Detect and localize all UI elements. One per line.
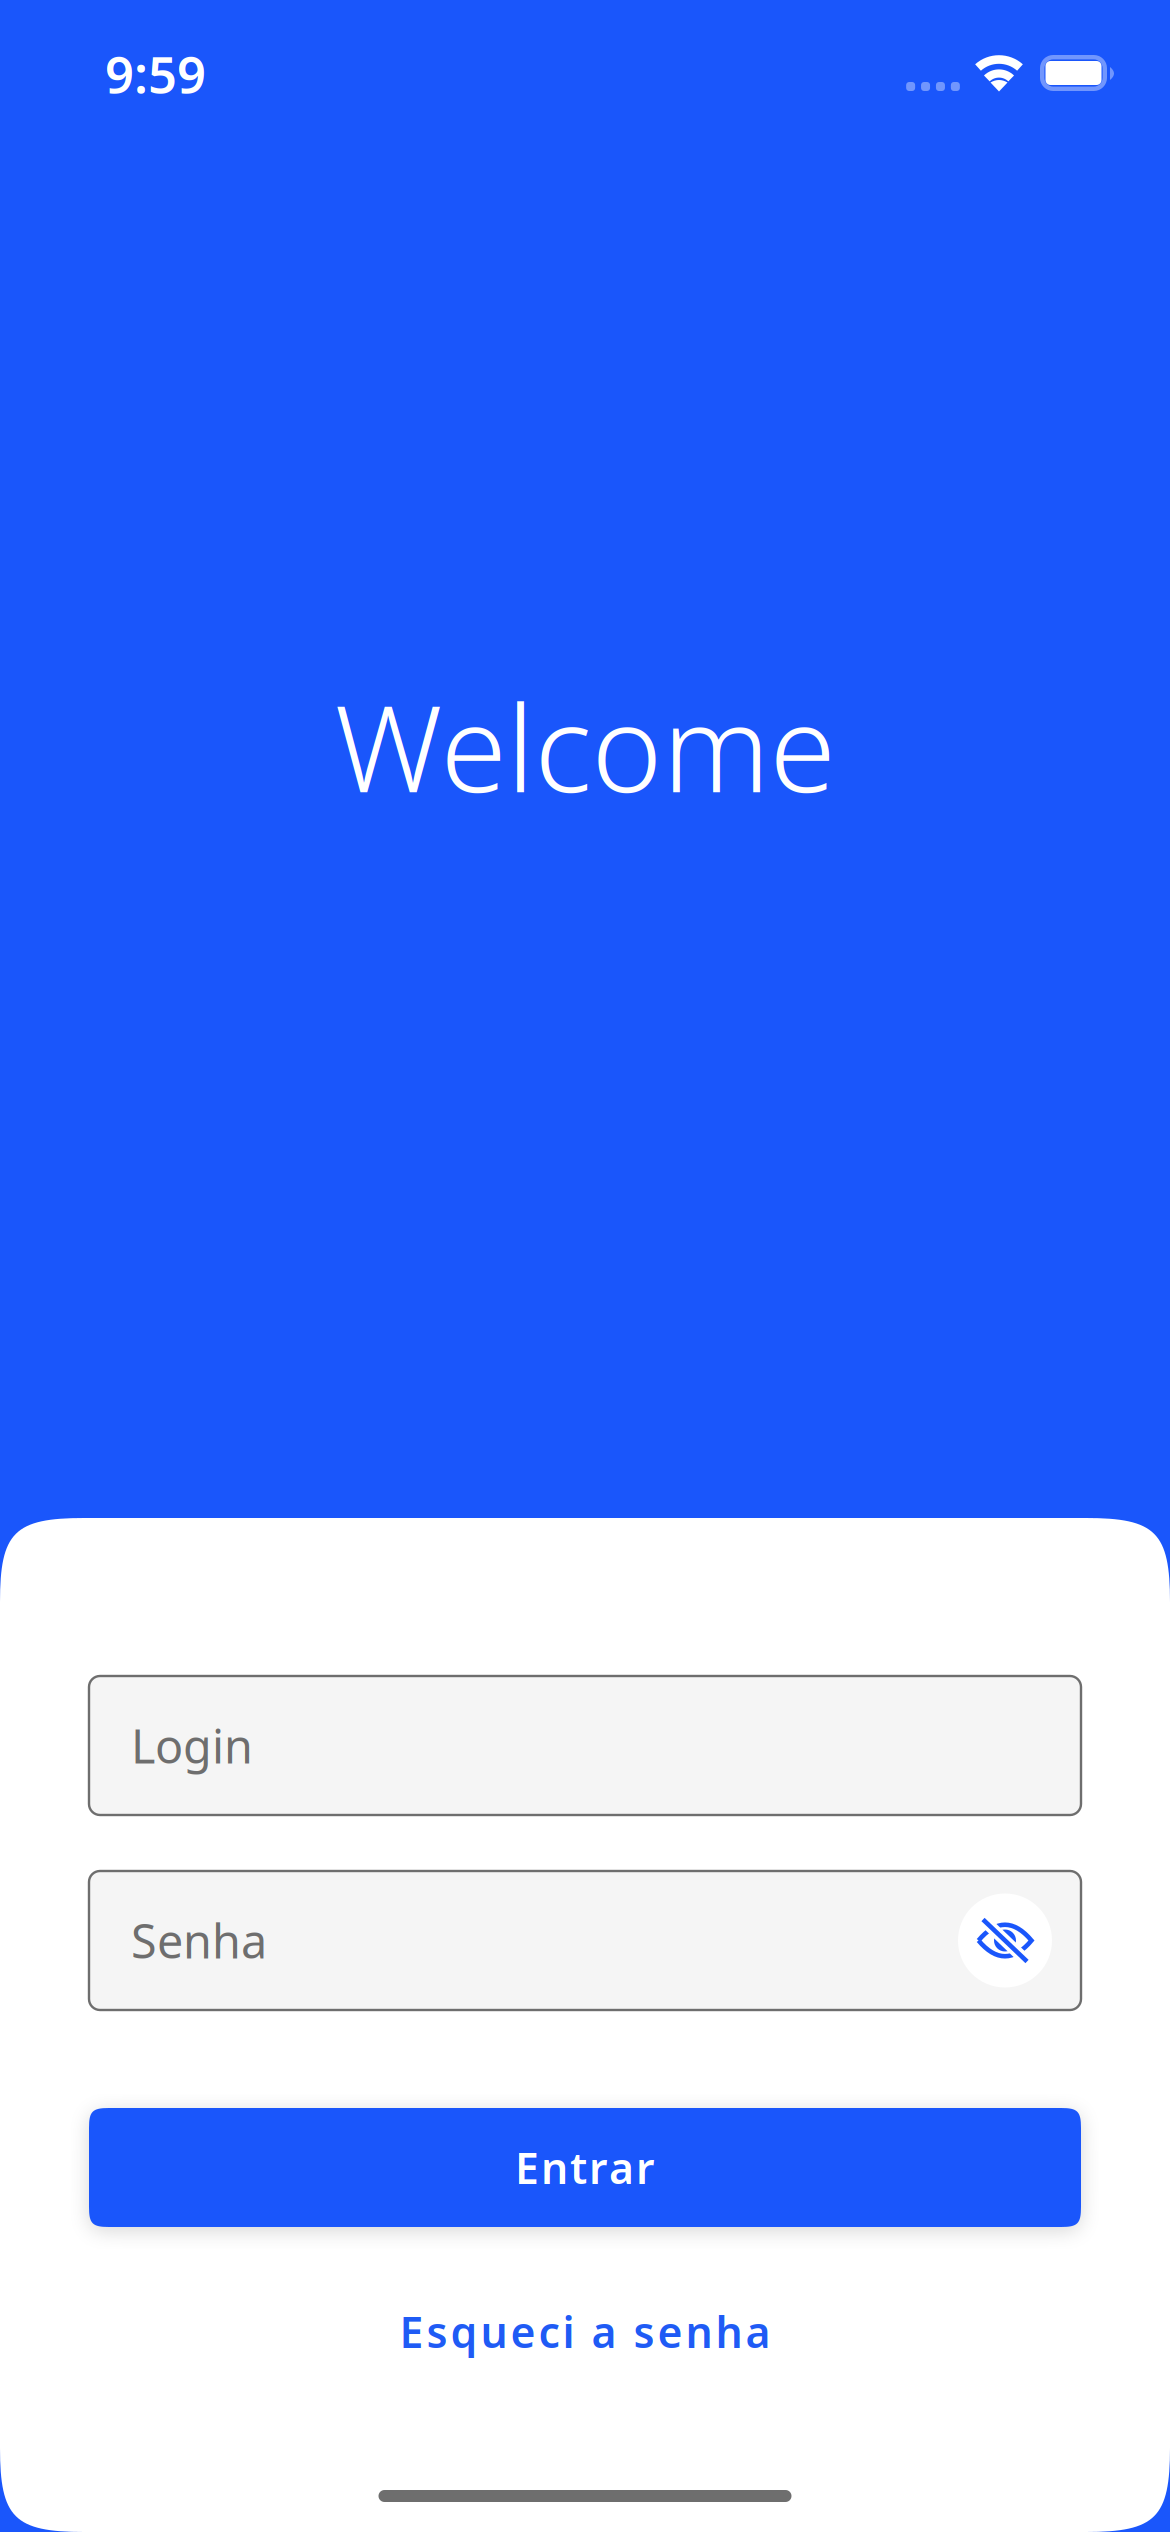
staticText: Welcome	[334, 666, 835, 825]
button[interactable]: Mostrar senha	[958, 1893, 1052, 1987]
staticText: Entrar	[515, 2139, 655, 2196]
button[interactable]: Entrar	[89, 2108, 1081, 2227]
staticText: Login	[131, 1714, 253, 1776]
staticText: 9:59	[105, 40, 206, 107]
button[interactable]: Esqueci a senha	[399, 2303, 770, 2360]
staticText: Esqueci a senha	[399, 2303, 770, 2360]
staticText: Senha	[131, 1909, 267, 1971]
